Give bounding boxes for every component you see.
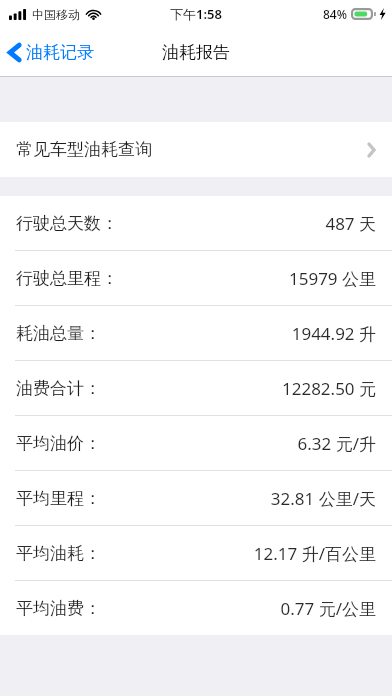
- staticText: 平均油价：: [16, 433, 101, 454]
- staticText: 平均里程：: [16, 488, 101, 509]
- button[interactable]: 行驶总天数：: [0, 196, 392, 250]
- button[interactable]: 平均油耗：: [0, 526, 392, 580]
- staticText: 15979 公里: [288, 267, 376, 290]
- button[interactable]: 行驶总里程：: [0, 251, 392, 305]
- staticText: 32.81 公里/天: [270, 487, 376, 510]
- other: 查看常见车型油耗查询: [367, 142, 376, 158]
- staticText: 中国移动: [32, 7, 80, 22]
- button[interactable]: 油费合计：: [0, 361, 392, 415]
- button[interactable]: 耗油总量：: [0, 306, 392, 360]
- staticText: 1944.92 升: [291, 322, 376, 345]
- button[interactable]: 平均油费：: [0, 581, 392, 635]
- staticText: 487 天: [325, 212, 376, 235]
- staticText: 12.17 升/百公里: [253, 542, 376, 565]
- staticText: 6.32 元/升: [297, 432, 376, 455]
- button[interactable]: 常见车型油耗查询: [0, 122, 392, 177]
- staticText: 油耗记录: [26, 42, 94, 63]
- button[interactable]: 平均油价：: [0, 416, 392, 470]
- staticText: 84%: [323, 6, 347, 22]
- staticText: 油耗报告: [162, 42, 230, 63]
- staticText: 平均油费：: [16, 598, 101, 619]
- button[interactable]: 平均里程：: [0, 471, 392, 525]
- staticText: 常见车型油耗查询: [16, 139, 152, 160]
- staticText: 平均油耗：: [16, 543, 101, 564]
- staticText: 12282.50 元: [281, 377, 376, 400]
- staticText: 0.77 元/公里: [280, 597, 376, 620]
- staticText: 行驶总天数：: [16, 213, 118, 234]
- staticText: 行驶总里程：: [16, 268, 118, 289]
- staticText: 油费合计：: [16, 378, 101, 399]
- staticText: 耗油总量：: [16, 323, 101, 344]
- button[interactable]: 油耗记录: [0, 36, 104, 69]
- staticText: 下午1:58: [170, 5, 222, 23]
